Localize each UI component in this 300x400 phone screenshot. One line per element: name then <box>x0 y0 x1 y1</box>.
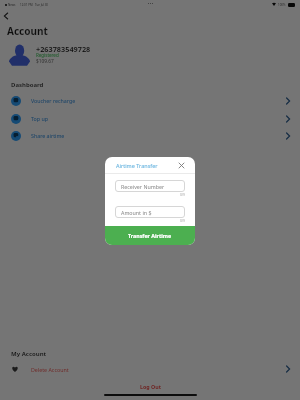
button[interactable]: Close <box>175 159 187 171</box>
staticText: Top up <box>31 115 48 122</box>
button[interactable]: Top up <box>0 111 300 127</box>
staticText: 0/9 <box>180 193 185 197</box>
button[interactable]: Transfer Airtime <box>105 226 195 245</box>
staticText: Account <box>7 24 48 38</box>
staticText: Amount in $ <box>121 209 152 216</box>
staticText: Transfer Airtime <box>128 232 172 239</box>
button[interactable]: Voucher recharge <box>0 93 300 109</box>
staticText: Log Out <box>140 383 161 390</box>
staticText: Registered <box>36 52 59 58</box>
staticText: My Account <box>11 350 47 358</box>
staticText: News <box>8 3 16 7</box>
staticText: Airtime Transfer <box>116 162 158 169</box>
staticText: Share airtime <box>31 132 65 139</box>
staticText: Tue Jul 30 <box>35 3 49 7</box>
staticText: +263783549728 <box>36 44 91 54</box>
button[interactable]: Amount in $ <box>115 206 185 218</box>
button[interactable]: Share airtime <box>0 128 300 144</box>
staticText: Voucher recharge <box>31 97 76 104</box>
staticText: Delete Account <box>31 366 69 373</box>
staticText: Dashboard <box>11 81 44 89</box>
staticText: Receiver Number <box>121 183 165 190</box>
staticText: 12:01 PM <box>20 3 33 7</box>
staticText: 0/9 <box>180 219 185 223</box>
staticText: 100% <box>278 3 286 7</box>
button[interactable]: Back <box>0 9 12 22</box>
button[interactable]: Receiver Number <box>115 180 185 192</box>
button[interactable]: Delete Account <box>0 362 300 376</box>
staticText: $109.67 <box>36 58 54 65</box>
button[interactable]: Log Out <box>0 380 300 392</box>
